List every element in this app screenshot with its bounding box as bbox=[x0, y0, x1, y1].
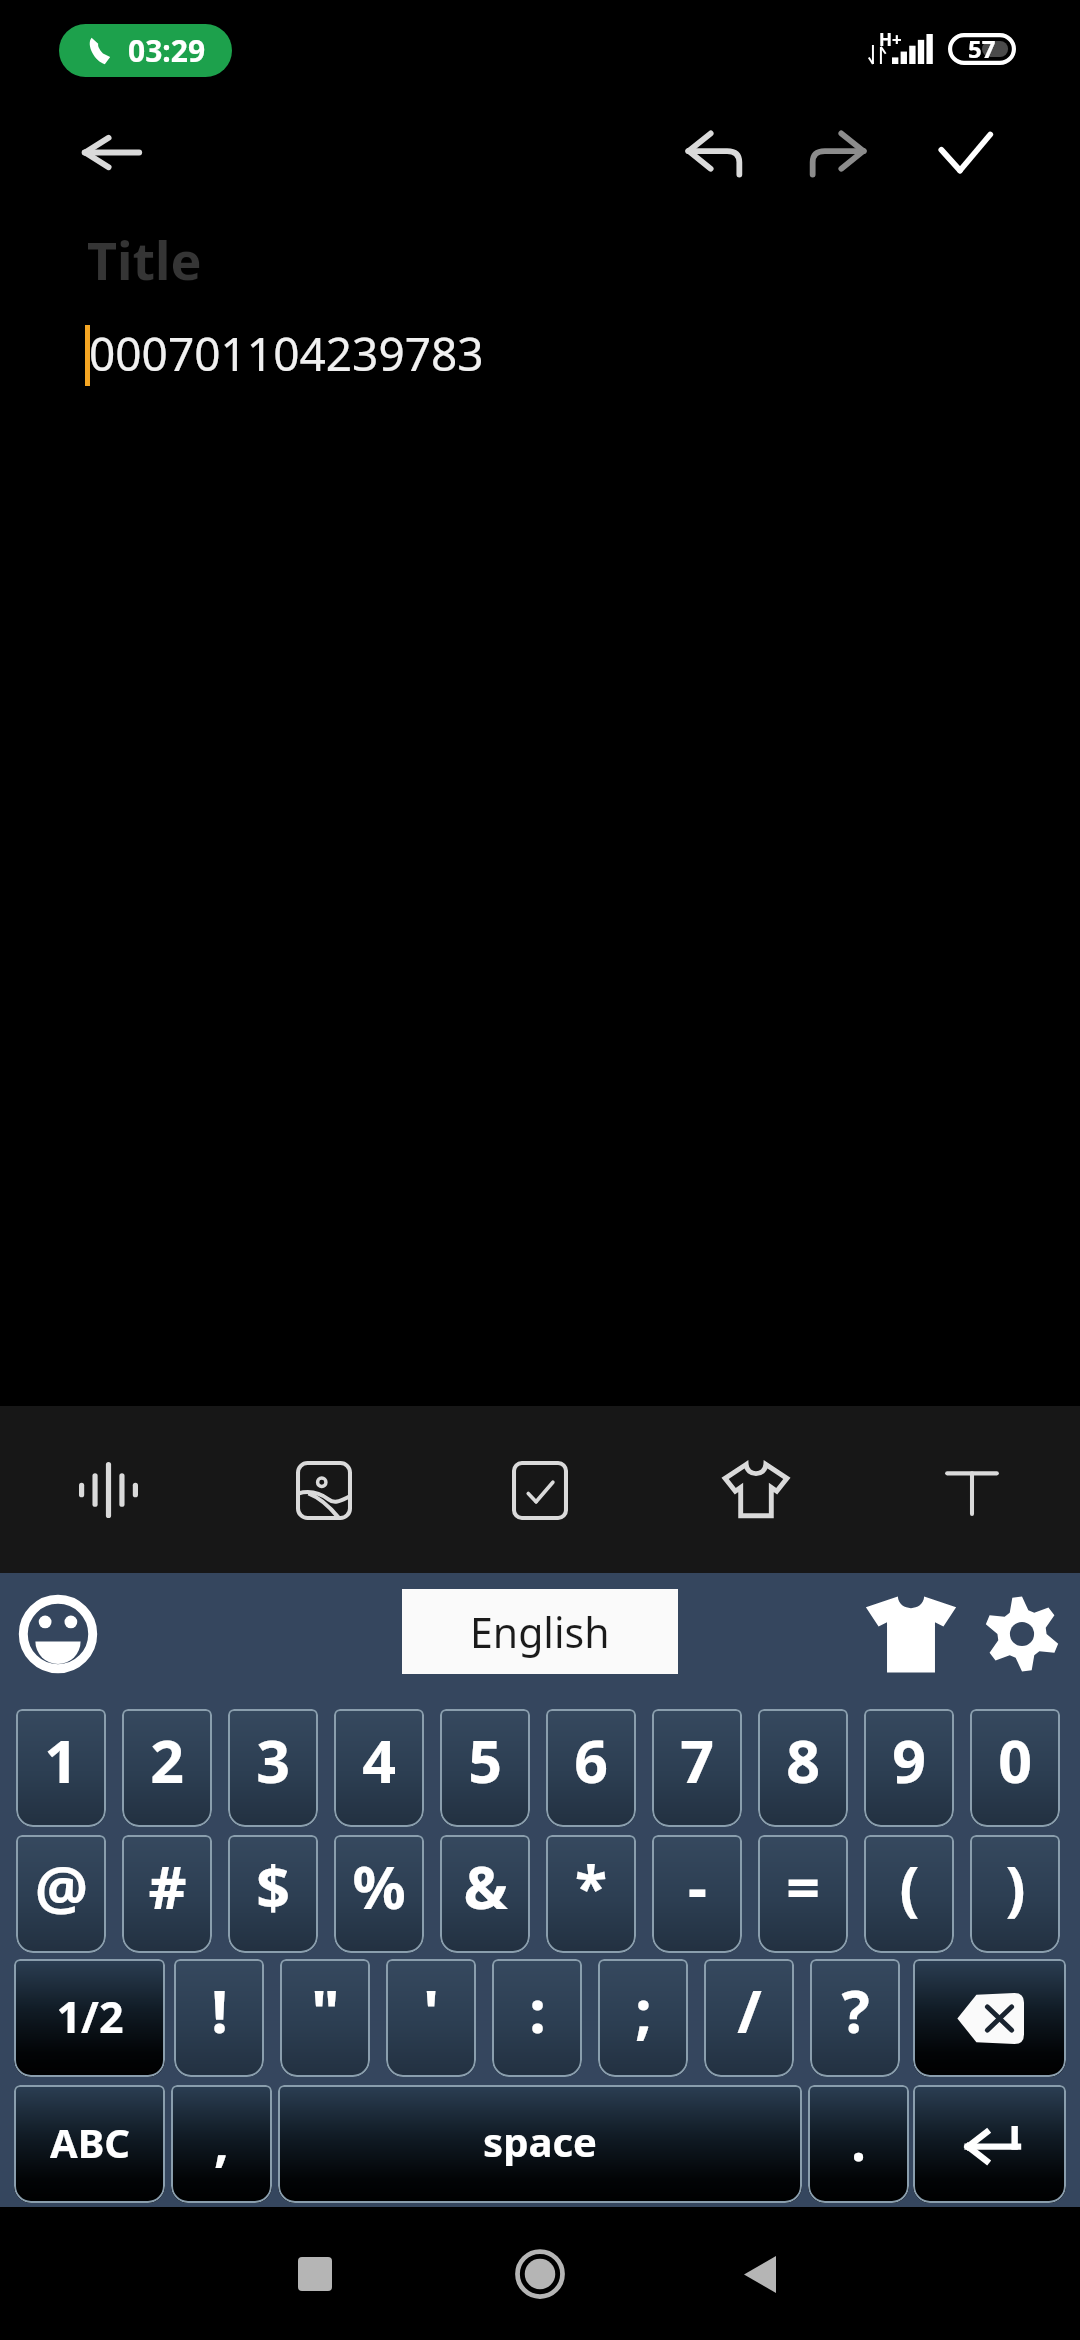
button[interactable]: Keyboard settings bbox=[972, 1584, 1072, 1684]
staticText: % bbox=[352, 1846, 406, 1926]
staticText: 1/2 bbox=[56, 1987, 124, 2046]
staticText: ' bbox=[423, 1970, 439, 2050]
staticText: 000701104239783 bbox=[89, 322, 484, 385]
button[interactable]: Text format bbox=[912, 1430, 1032, 1550]
button[interactable]: Backspace bbox=[913, 1959, 1066, 2077]
button[interactable]: $ bbox=[228, 1835, 318, 1953]
button[interactable]: Home bbox=[486, 2220, 594, 2328]
button[interactable]: 3 bbox=[228, 1709, 318, 1827]
staticText: / bbox=[737, 1970, 762, 2050]
button[interactable]: . bbox=[808, 2085, 909, 2203]
staticText: 2 bbox=[150, 1720, 184, 1800]
button[interactable]: space bbox=[278, 2085, 802, 2203]
button[interactable]: Theme bbox=[696, 1430, 816, 1550]
staticText: space bbox=[483, 2114, 597, 2168]
staticText: 1 bbox=[44, 1720, 78, 1800]
staticText: ) bbox=[1005, 1846, 1026, 1926]
button[interactable]: ( bbox=[864, 1835, 954, 1953]
staticText: ( bbox=[899, 1846, 920, 1926]
button[interactable]: 6 bbox=[546, 1709, 636, 1827]
button[interactable]: ' bbox=[386, 1959, 476, 2077]
staticText: 57 bbox=[968, 32, 996, 64]
button[interactable]: , bbox=[171, 2085, 272, 2203]
button[interactable]: Save bbox=[913, 100, 1017, 204]
button[interactable]: English bbox=[402, 1589, 678, 1674]
button[interactable]: 0 bbox=[970, 1709, 1060, 1827]
staticText: ; bbox=[635, 1970, 652, 2050]
button[interactable]: Back bbox=[59, 100, 163, 204]
staticText: @ bbox=[35, 1846, 88, 1926]
staticText: 9 bbox=[892, 1720, 926, 1800]
button[interactable]: 1/2 bbox=[14, 1959, 165, 2077]
button[interactable]: ! bbox=[174, 1959, 264, 2077]
staticText: H+ bbox=[879, 28, 902, 51]
staticText: $ bbox=[256, 1846, 290, 1926]
button[interactable]: # bbox=[122, 1835, 212, 1953]
button[interactable]: 7 bbox=[652, 1709, 742, 1827]
button[interactable]: Add checklist bbox=[480, 1430, 600, 1550]
staticText: 03:29 bbox=[128, 30, 206, 71]
button[interactable]: ? bbox=[810, 1959, 900, 2077]
staticText: 0 bbox=[998, 1720, 1032, 1800]
button[interactable]: Back bbox=[706, 2220, 814, 2328]
staticText: # bbox=[148, 1846, 187, 1926]
staticText: ! bbox=[211, 1970, 228, 2050]
button[interactable]: Emoji bbox=[13, 1589, 103, 1679]
button[interactable]: ; bbox=[598, 1959, 688, 2077]
staticText: * bbox=[575, 1846, 607, 1926]
button[interactable]: Keyboard theme bbox=[861, 1584, 961, 1684]
staticText: Title bbox=[87, 224, 202, 295]
button[interactable]: Record audio bbox=[48, 1430, 168, 1550]
button[interactable]: Enter bbox=[913, 2085, 1066, 2203]
staticText: ? bbox=[841, 1970, 870, 2050]
staticText: ABC bbox=[50, 2115, 130, 2169]
button[interactable]: - bbox=[652, 1835, 742, 1953]
staticText: = bbox=[786, 1846, 820, 1926]
button[interactable]: 9 bbox=[864, 1709, 954, 1827]
staticText: 6 bbox=[574, 1720, 608, 1800]
staticText: , bbox=[214, 2105, 229, 2176]
staticText: English bbox=[470, 1604, 610, 1660]
button[interactable]: Recent apps bbox=[261, 2220, 369, 2328]
staticText: . bbox=[851, 2105, 866, 2176]
button[interactable]: " bbox=[280, 1959, 370, 2077]
button[interactable]: % bbox=[334, 1835, 424, 1953]
button[interactable]: Redo bbox=[787, 100, 891, 204]
staticText: 4 bbox=[362, 1720, 396, 1800]
staticText: 3 bbox=[256, 1720, 290, 1800]
button[interactable]: 4 bbox=[334, 1709, 424, 1827]
button[interactable]: 1 bbox=[16, 1709, 106, 1827]
button[interactable]: * bbox=[546, 1835, 636, 1953]
button[interactable]: 8 bbox=[758, 1709, 848, 1827]
button[interactable]: ABC bbox=[14, 2085, 165, 2203]
button[interactable]: Add image bbox=[264, 1430, 384, 1550]
button[interactable]: @ bbox=[16, 1835, 106, 1953]
staticText: - bbox=[688, 1846, 707, 1926]
button[interactable]: 03:29 bbox=[59, 24, 232, 77]
button[interactable]: ) bbox=[970, 1835, 1060, 1953]
staticText: " bbox=[311, 1970, 340, 2050]
staticText: 8 bbox=[786, 1720, 820, 1800]
button[interactable]: / bbox=[704, 1959, 794, 2077]
staticText: : bbox=[529, 1970, 546, 2050]
button[interactable]: = bbox=[758, 1835, 848, 1953]
button[interactable]: : bbox=[492, 1959, 582, 2077]
button[interactable]: 5 bbox=[440, 1709, 530, 1827]
staticText: 7 bbox=[680, 1720, 714, 1800]
staticText: 5 bbox=[468, 1720, 502, 1800]
button[interactable]: & bbox=[440, 1835, 530, 1953]
staticText: & bbox=[463, 1846, 508, 1926]
button[interactable]: Undo bbox=[660, 100, 764, 204]
button[interactable]: 2 bbox=[122, 1709, 212, 1827]
